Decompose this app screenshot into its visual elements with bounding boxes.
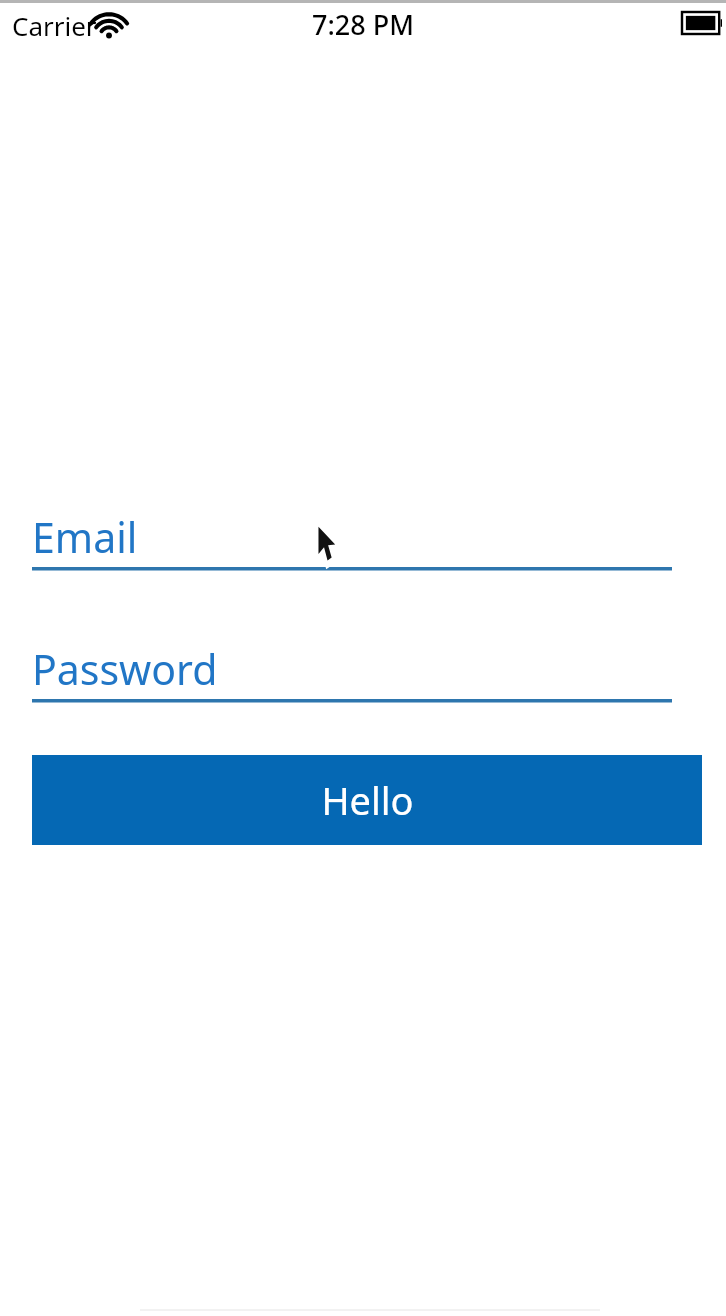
staticText: 7:28 PM (312, 6, 414, 42)
button[interactable]: Email (32, 508, 672, 566)
staticText: Email (32, 509, 138, 565)
button[interactable]: Hello (32, 755, 702, 845)
staticText: Hello (321, 774, 414, 826)
staticText: Password (32, 641, 218, 697)
other: Battery full (682, 12, 722, 34)
other: Wi-Fi signal (92, 12, 126, 40)
staticText: Carrier (12, 8, 97, 42)
button[interactable]: Password (32, 640, 672, 698)
